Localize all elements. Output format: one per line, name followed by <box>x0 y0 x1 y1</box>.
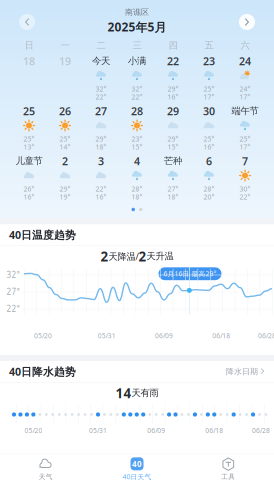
staticText: 13° <box>23 143 34 151</box>
staticText: 2025年5月 <box>107 19 166 35</box>
button[interactable]: 29 <box>155 104 191 152</box>
staticText: 16° <box>167 93 178 101</box>
staticText: 06/28 <box>252 426 270 435</box>
staticText: 40日天气 <box>122 472 151 480</box>
staticText: 17° <box>239 143 250 151</box>
button[interactable]: 今天 <box>83 54 119 102</box>
staticText: 降水日期 <box>226 367 258 376</box>
button[interactable]: 19 <box>47 54 83 102</box>
staticText: 6 <box>206 154 212 168</box>
staticText: 06/28 <box>258 331 274 340</box>
staticText: 天升温 <box>146 250 173 262</box>
staticText: 22° <box>95 185 106 193</box>
button[interactable]: 3 <box>83 154 119 202</box>
staticText: 19 <box>59 54 71 68</box>
staticText: 六 <box>240 40 249 51</box>
staticText: 05/20 <box>24 426 42 435</box>
button[interactable]: 40 <box>91 456 183 480</box>
staticText: 18° <box>95 143 106 151</box>
staticText: 06/18 <box>205 426 223 435</box>
staticText: 27° <box>167 185 178 193</box>
staticText: 05/31 <box>89 426 107 435</box>
staticText: 29° <box>167 135 178 143</box>
button[interactable]: 小满 <box>119 54 155 102</box>
staticText: 五 <box>204 40 213 51</box>
staticText: 25 <box>23 104 35 118</box>
staticText: 25° <box>239 135 250 143</box>
button[interactable]: 上个月 <box>19 14 35 30</box>
button[interactable]: 6 <box>191 154 227 202</box>
staticText: 16° <box>23 193 34 201</box>
button[interactable]: 18 <box>11 54 47 102</box>
staticText: 天降温/ <box>108 250 138 262</box>
staticText: 15° <box>167 143 178 151</box>
staticText: 06/09 <box>155 331 173 340</box>
staticText: 二 <box>96 40 105 51</box>
staticText: 40日降水趋势 <box>9 364 76 379</box>
staticText: 2 <box>62 154 68 168</box>
staticText: 17° <box>203 93 214 101</box>
button[interactable]: 4 <box>119 154 155 202</box>
staticText: 工具 <box>221 473 235 480</box>
staticText: 18° <box>167 193 178 201</box>
staticText: 14° <box>59 143 70 151</box>
button[interactable]: 22 <box>155 54 191 102</box>
staticText: 27 <box>95 104 107 118</box>
staticText: 05/20 <box>34 331 52 340</box>
button[interactable]: 26 <box>47 104 83 152</box>
staticText: 25° <box>203 135 214 143</box>
staticText: 南谯区 <box>125 7 149 17</box>
staticText: 32° <box>95 85 106 93</box>
staticText: 7 <box>242 154 248 168</box>
staticText: 28° <box>203 185 214 193</box>
staticText: 24° <box>239 85 250 93</box>
button[interactable]: 下个月 <box>239 14 255 30</box>
staticText: 天有雨 <box>131 387 158 399</box>
staticText: 芒种 <box>164 155 182 167</box>
button[interactable]: 天气 <box>0 457 91 480</box>
staticText: 天气 <box>39 473 53 480</box>
staticText: 23° <box>131 135 142 143</box>
staticText: 30° <box>239 185 250 193</box>
staticText: 40日温度趋势 <box>9 228 76 242</box>
staticText: 18° <box>131 193 142 201</box>
button[interactable]: 25 <box>11 104 47 152</box>
staticText: 28 <box>131 104 143 118</box>
staticText: 20° <box>203 193 214 201</box>
button[interactable]: 2 <box>47 154 83 202</box>
staticText: 27° <box>6 286 19 297</box>
button[interactable]: 30 <box>191 104 227 152</box>
staticText: 24 <box>239 54 251 68</box>
staticText: 一 <box>60 40 69 51</box>
staticText: 06/09 <box>147 426 165 435</box>
staticText: 25° <box>23 135 34 143</box>
staticText: 22° <box>95 93 106 101</box>
staticText: 6月16日 最高29° <box>163 269 216 278</box>
staticText: 22° <box>239 193 250 201</box>
button[interactable]: 23 <box>191 54 227 102</box>
button[interactable]: 24 <box>227 54 263 102</box>
button[interactable]: 儿童节 <box>11 154 47 202</box>
staticText: 25° <box>203 85 214 93</box>
staticText: 18 <box>23 54 35 68</box>
button[interactable]: 端午节 <box>227 104 263 152</box>
staticText: 29° <box>95 135 106 143</box>
button[interactable]: 7 <box>227 154 263 202</box>
button[interactable]: 工具 <box>183 457 274 480</box>
staticText: 26 <box>59 104 71 118</box>
staticText: 小满 <box>128 55 146 67</box>
staticText: 29 <box>167 104 179 118</box>
button[interactable]: 28 <box>119 104 155 152</box>
button[interactable]: 芒种 <box>155 154 191 202</box>
staticText: 日 <box>24 40 33 51</box>
staticText: 3 <box>98 154 104 168</box>
staticText: 29° <box>59 185 70 193</box>
staticText: 25° <box>59 135 70 143</box>
button[interactable]: 40日降水趋势 <box>0 361 274 382</box>
staticText: 三 <box>132 40 141 51</box>
staticText: 14 <box>115 384 131 402</box>
staticText: 22° <box>131 93 142 101</box>
staticText: 儿童节 <box>15 155 42 167</box>
button[interactable]: 27 <box>83 104 119 152</box>
staticText: 22° <box>6 303 19 314</box>
